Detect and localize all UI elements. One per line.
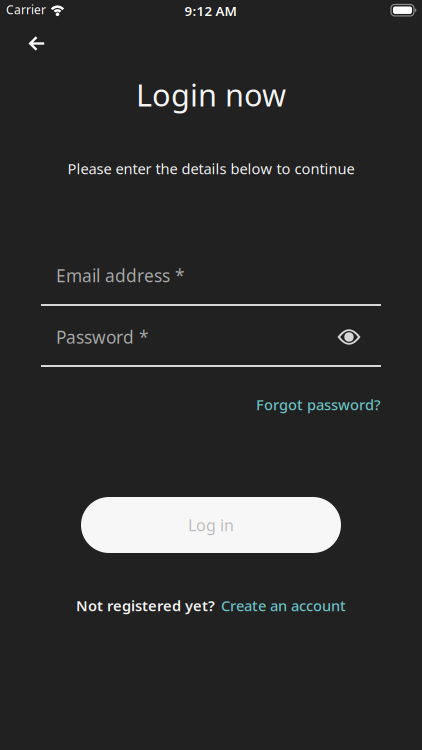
staticText: Password * bbox=[56, 325, 149, 348]
staticText: Login now bbox=[136, 74, 286, 115]
button[interactable]: Forgot password? bbox=[256, 395, 381, 414]
staticText: Not registered yet? bbox=[76, 596, 215, 615]
staticText: 9:12 AM bbox=[184, 2, 236, 20]
button[interactable]: Create an account bbox=[221, 596, 346, 615]
button[interactable]: Show password bbox=[337, 329, 360, 345]
button[interactable]: Back bbox=[15, 21, 59, 65]
staticText: Log in bbox=[188, 514, 234, 536]
staticText: Create an account bbox=[221, 596, 346, 615]
button[interactable]: Log in bbox=[81, 497, 341, 553]
staticText: Please enter the details below to contin… bbox=[67, 159, 354, 178]
staticText: Email address * bbox=[56, 264, 185, 287]
staticText: Forgot password? bbox=[256, 395, 381, 414]
staticText: Carrier bbox=[6, 1, 46, 17]
